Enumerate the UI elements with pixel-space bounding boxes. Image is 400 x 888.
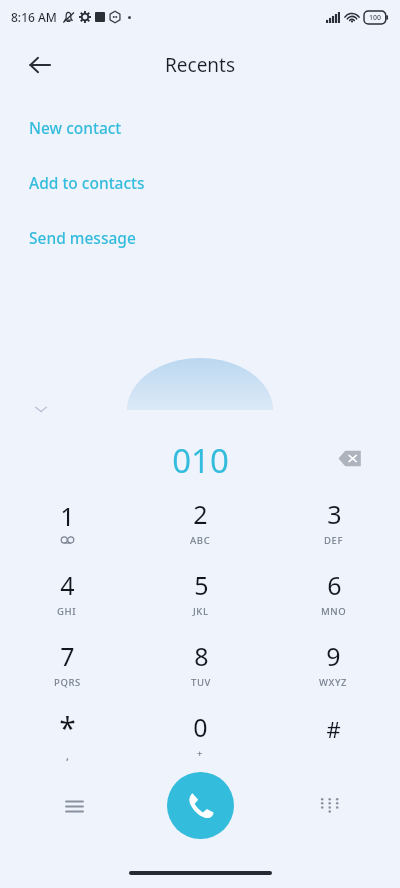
button[interactable]: Send message	[0, 220, 400, 254]
staticText: JKL	[193, 605, 209, 618]
button[interactable]: 3	[267, 486, 400, 557]
button[interactable]: 6	[267, 557, 400, 628]
button[interactable]: #	[267, 699, 400, 770]
button[interactable]: Back	[16, 41, 64, 89]
staticText: PQRS	[54, 676, 81, 689]
staticText: 5	[194, 568, 209, 602]
staticText: MNO	[321, 605, 347, 618]
button[interactable]: 4	[0, 557, 134, 628]
button[interactable]: Call	[167, 772, 234, 839]
staticText: 010	[172, 438, 229, 483]
staticText: TUV	[191, 676, 211, 689]
button[interactable]: 5	[134, 557, 267, 628]
button[interactable]: Backspace	[330, 438, 370, 478]
button[interactable]: Expand	[34, 402, 48, 416]
button[interactable]: *	[0, 699, 134, 770]
staticText: 2	[193, 497, 208, 531]
button[interactable]: 9	[267, 628, 400, 699]
button[interactable]: 0	[134, 699, 267, 770]
staticText: New contact	[29, 117, 122, 138]
staticText: 9	[326, 639, 341, 673]
button[interactable]: 1	[0, 486, 134, 557]
staticText: DEF	[324, 534, 344, 547]
staticText: 8	[194, 639, 209, 673]
button[interactable]: 7	[0, 628, 134, 699]
button[interactable]: Dialpad	[310, 788, 346, 824]
button[interactable]: 2	[134, 486, 267, 557]
staticText: Send message	[29, 227, 136, 248]
staticText: 8:16 AM	[11, 9, 57, 25]
staticText: 7	[60, 639, 75, 673]
staticText: ABC	[190, 534, 211, 547]
staticText: 100	[369, 13, 382, 23]
button[interactable]: New contact	[0, 110, 400, 144]
staticText: 1	[60, 499, 75, 533]
staticText: GHI	[57, 605, 77, 618]
button[interactable]: Menu	[56, 788, 92, 824]
button[interactable]: Add to contacts	[0, 165, 400, 199]
button[interactable]: 8	[134, 628, 267, 699]
staticText: 4	[60, 568, 75, 602]
staticText: +	[197, 747, 204, 760]
staticText: WXYZ	[319, 676, 348, 689]
staticText: 3	[327, 497, 342, 531]
staticText: Add to contacts	[29, 172, 145, 193]
staticText: ,	[66, 748, 70, 763]
staticText: Recents	[165, 52, 236, 78]
staticText: 6	[327, 568, 342, 602]
staticText: #	[326, 714, 341, 744]
staticText: 0	[193, 710, 208, 744]
staticText: *	[59, 707, 76, 748]
